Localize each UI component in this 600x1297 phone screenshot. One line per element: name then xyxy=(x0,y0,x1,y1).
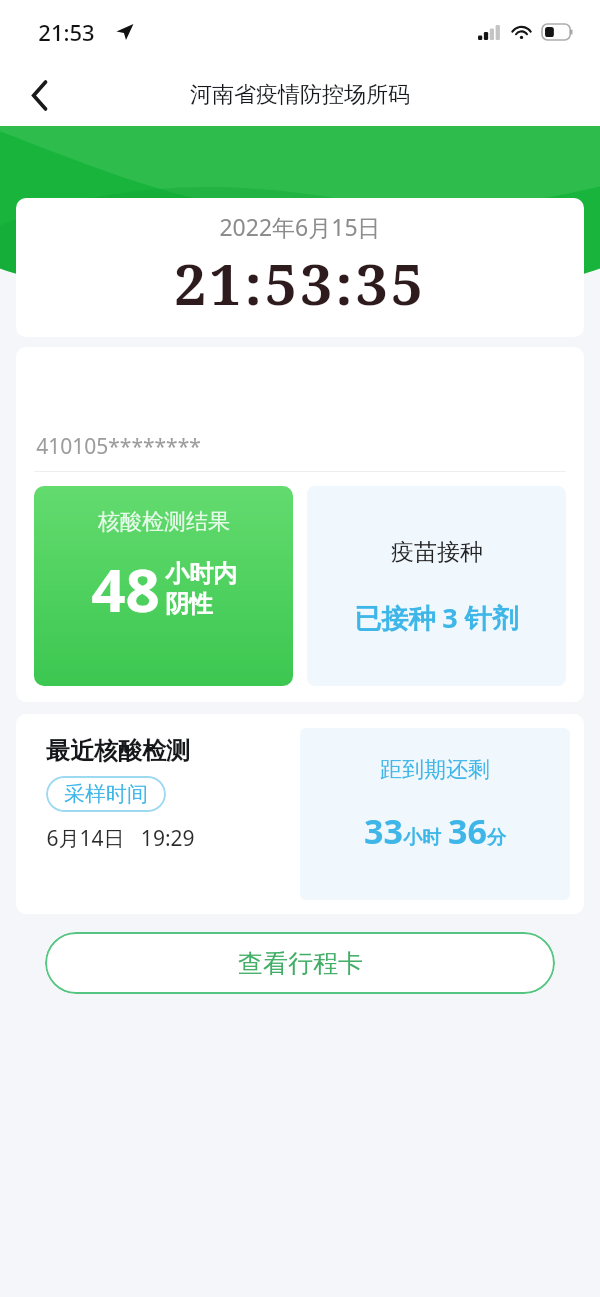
staticText: 6月14日 19:29 xyxy=(46,824,195,853)
staticText: 48 xyxy=(91,548,160,630)
staticText: 33 xyxy=(364,808,403,854)
staticText: 分 xyxy=(487,826,506,850)
staticText: 查看行程卡 xyxy=(238,948,363,979)
staticText: 距到期还剩 xyxy=(380,756,490,784)
staticText: 21:53 xyxy=(38,17,95,47)
staticText: 小时内 xyxy=(165,559,237,589)
button[interactable]: 距到期还剩 xyxy=(300,728,570,900)
staticText: 2022年6月15日 xyxy=(219,211,381,242)
staticText: 采样时间 xyxy=(64,781,148,807)
staticText: 核酸检测结果 xyxy=(98,508,230,536)
staticText: 已接种 3 针剂 xyxy=(354,599,519,636)
staticText: 最近核酸检测 xyxy=(46,736,190,766)
button[interactable]: Back xyxy=(16,71,64,119)
staticText: 阴性 xyxy=(165,589,213,619)
staticText: 河南省疫情防控场所码 xyxy=(190,81,410,109)
staticText: 410105******** xyxy=(36,432,201,461)
button[interactable]: 查看行程卡 xyxy=(45,932,555,994)
staticText: 疫苗接种 xyxy=(391,538,483,567)
staticText: 36 xyxy=(448,808,487,854)
button[interactable]: 疫苗接种 xyxy=(307,486,566,686)
button[interactable]: 核酸检测结果 xyxy=(34,486,293,686)
staticText: 21:53:35 xyxy=(174,244,426,322)
staticText: 小时 xyxy=(403,826,441,850)
